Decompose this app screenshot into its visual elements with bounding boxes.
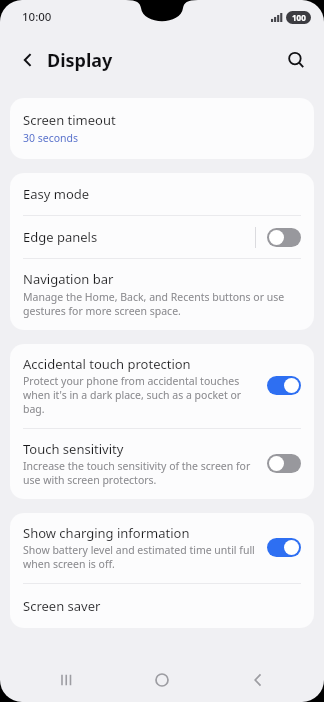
- staticText: Navigation bar: [23, 270, 114, 288]
- button[interactable]: Off: [267, 228, 301, 247]
- staticText: 10:00: [22, 9, 52, 25]
- staticText: Touch sensitivity: [23, 440, 124, 458]
- staticText: Manage the Home, Back, and Recents butto…: [23, 290, 294, 318]
- staticText: Edge panels: [23, 228, 255, 246]
- button[interactable]: Search: [278, 42, 314, 78]
- button[interactable]: Back: [229, 657, 287, 702]
- button[interactable]: Screen timeout: [10, 98, 314, 159]
- staticText: Easy mode: [23, 185, 90, 203]
- staticText: Show battery level and estimated time un…: [23, 543, 257, 571]
- button[interactable]: Home: [133, 657, 191, 702]
- button[interactable]: Show charging information: [10, 513, 314, 583]
- button[interactable]: Easy mode: [10, 173, 314, 215]
- button[interactable]: Navigation bar: [10, 259, 314, 330]
- button[interactable]: Accidental touch protection: [10, 344, 314, 428]
- button[interactable]: On: [267, 538, 301, 557]
- button[interactable]: Off: [267, 454, 301, 473]
- staticText: Display: [47, 48, 113, 73]
- button[interactable]: On: [267, 376, 301, 395]
- staticText: Increase the touch sensitivity of the sc…: [23, 459, 257, 487]
- button[interactable]: Edge panels: [10, 216, 314, 258]
- button[interactable]: Back: [10, 42, 46, 78]
- staticText: Show charging information: [23, 524, 190, 542]
- staticText: Screen timeout: [23, 111, 116, 129]
- staticText: Screen saver: [23, 597, 101, 615]
- staticText: Protect your phone from accidental touch…: [23, 374, 257, 416]
- button[interactable]: Touch sensitivity: [10, 429, 314, 499]
- button[interactable]: Recents: [38, 657, 96, 702]
- staticText: 30 seconds: [23, 131, 79, 145]
- button[interactable]: Screen saver: [10, 584, 314, 628]
- staticText: 100: [292, 12, 306, 23]
- staticText: Accidental touch protection: [23, 355, 191, 373]
